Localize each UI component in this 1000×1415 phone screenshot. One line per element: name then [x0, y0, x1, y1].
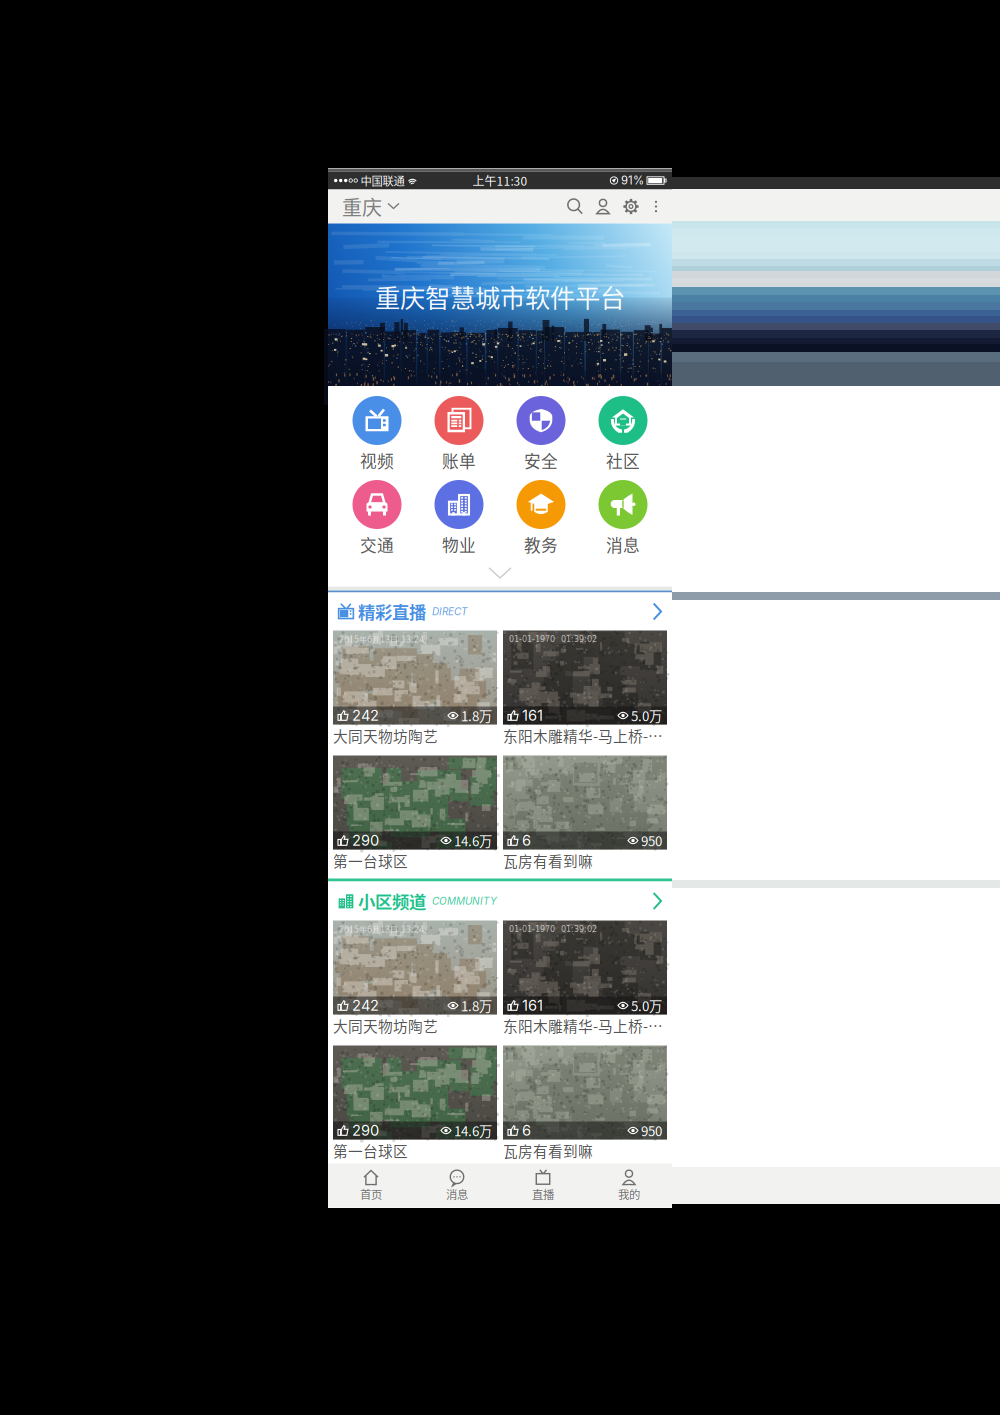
staticText: 交通 — [360, 532, 394, 556]
button[interactable]: 重庆 — [328, 189, 413, 223]
staticText: 161 — [518, 707, 543, 724]
staticText: 01-01-1970 01:39:02 — [509, 634, 597, 644]
button[interactable]: 小区频道 — [328, 881, 672, 920]
staticText: 瓦房有看到嘛 — [503, 850, 593, 871]
button[interactable]: 账单 — [418, 396, 500, 480]
staticText: 直播 — [532, 1186, 554, 1202]
button[interactable]: 01-01-1970 01:39:02 — [503, 630, 667, 746]
staticText: 账单 — [442, 448, 476, 472]
staticText: 中国联通 — [360, 172, 404, 189]
staticText: 1.8万 — [458, 996, 492, 1015]
staticText: 6 — [518, 1122, 531, 1139]
staticText: COMMUNITY — [426, 895, 497, 907]
button[interactable]: 首页 — [328, 1163, 414, 1207]
staticText: 消息 — [446, 1186, 468, 1202]
button[interactable]: 视频 — [336, 396, 418, 480]
button[interactable]: 安全 — [500, 396, 582, 480]
staticText: 视频 — [360, 448, 394, 472]
staticText: 重庆 — [342, 192, 382, 221]
staticText: 290 — [348, 1122, 379, 1139]
button[interactable]: 6 — [503, 1045, 667, 1161]
staticText: 242 — [348, 997, 379, 1014]
staticText: 5.0万 — [628, 996, 662, 1015]
button[interactable]: 01-01-1970 01:39:02 — [503, 920, 667, 1036]
staticText: 我的 — [618, 1186, 640, 1202]
staticText: 消息 — [606, 532, 640, 556]
button[interactable]: 直播 — [500, 1163, 586, 1207]
staticText: 上午11:30 — [472, 172, 527, 189]
button[interactable]: Expand — [465, 564, 535, 584]
staticText: 91% — [621, 174, 644, 187]
staticText: 2015年6月13日 13:24 — [339, 634, 424, 645]
button[interactable]: More — [645, 189, 667, 223]
staticText: 重庆智慧城市软件平台 — [375, 278, 625, 315]
staticText: 161 — [518, 997, 543, 1014]
button[interactable]: 2015年6月13日 13:24 — [333, 630, 497, 746]
staticText: 第一台球区 — [333, 1140, 408, 1161]
staticText: 大同天物坊陶艺 — [333, 725, 438, 746]
button[interactable]: 教务 — [500, 480, 582, 564]
button[interactable]: 消息 — [414, 1163, 500, 1207]
staticText: 01-01-1970 01:39:02 — [509, 924, 597, 934]
staticText: DIRECT — [426, 605, 467, 618]
staticText: 14.6万 — [451, 831, 492, 850]
button[interactable]: 交通 — [336, 480, 418, 564]
button[interactable]: Account — [589, 189, 617, 223]
staticText: 东阳木雕精华-马上桥-木雕花厅 — [503, 1015, 667, 1036]
staticText: 290 — [348, 832, 379, 849]
button[interactable]: 290 — [333, 755, 497, 871]
staticText: 教务 — [524, 532, 558, 556]
staticText: 5.0万 — [628, 706, 662, 725]
button[interactable]: 我的 — [586, 1163, 672, 1207]
staticText: 东阳木雕精华-马上桥-木雕花厅 — [503, 725, 667, 746]
staticText: 社区 — [606, 448, 640, 472]
staticText: 242 — [348, 707, 379, 724]
staticText: 安全 — [524, 448, 558, 472]
staticText: 6 — [518, 832, 531, 849]
button[interactable]: 290 — [333, 1045, 497, 1161]
button[interactable]: 社区 — [582, 396, 664, 480]
button[interactable]: 精彩直播 — [328, 592, 672, 630]
staticText: 物业 — [442, 532, 476, 556]
button[interactable]: 物业 — [418, 480, 500, 564]
staticText: 14.6万 — [451, 1121, 492, 1140]
staticText: 瓦房有看到嘛 — [503, 1140, 593, 1161]
staticText: 950 — [638, 1121, 662, 1140]
staticText: 大同天物坊陶艺 — [333, 1015, 438, 1036]
staticText: 小区频道 — [354, 888, 426, 914]
staticText: 精彩直播 — [354, 599, 426, 624]
staticText: 第一台球区 — [333, 850, 408, 871]
button[interactable]: Search — [561, 189, 589, 223]
button[interactable]: 6 — [503, 755, 667, 871]
button[interactable]: 消息 — [582, 480, 664, 564]
button[interactable]: 2015年6月13日 13:24 — [333, 920, 497, 1036]
staticText: 首页 — [360, 1186, 382, 1202]
staticText: 1.8万 — [458, 706, 492, 725]
button[interactable]: Settings — [617, 189, 645, 223]
staticText: 950 — [638, 831, 662, 850]
staticText: 2015年6月13日 13:24 — [339, 924, 424, 935]
